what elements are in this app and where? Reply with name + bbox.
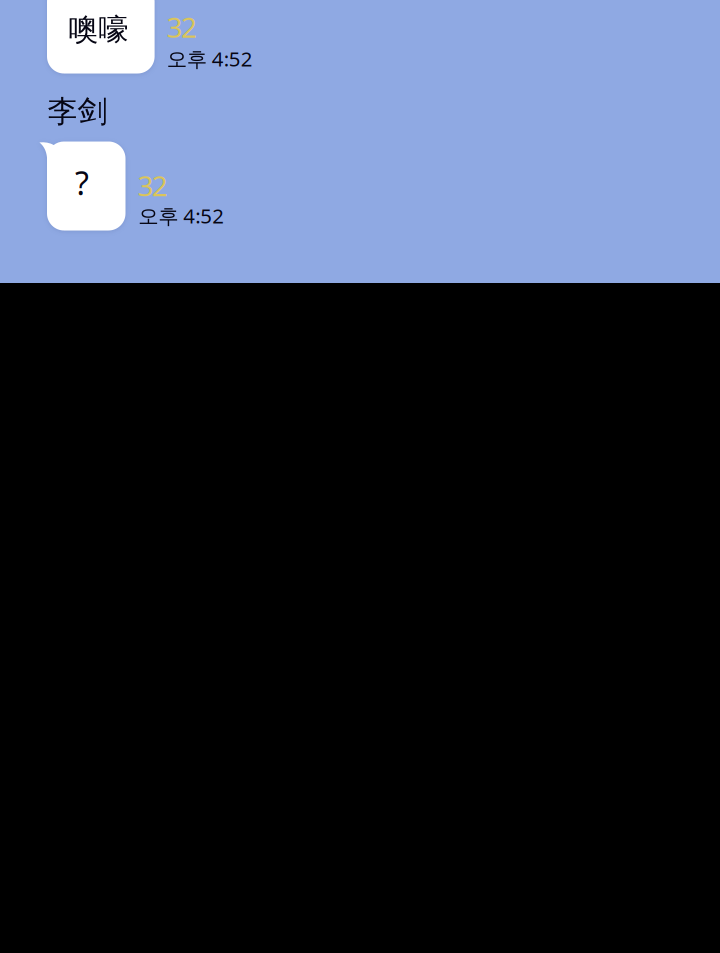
staticText: 32 [167, 8, 197, 46]
staticText: ? [75, 161, 89, 205]
staticText: 噢嚎 [69, 11, 129, 48]
staticText: 오후 4:52 [167, 45, 253, 72]
button[interactable]: ? [0, 0, 720, 283]
staticText: 32 [137, 166, 168, 204]
button[interactable]: 噢嚎 [0, 0, 720, 283]
staticText: 李剑 [47, 93, 107, 130]
staticText: 오후 4:52 [138, 202, 224, 229]
